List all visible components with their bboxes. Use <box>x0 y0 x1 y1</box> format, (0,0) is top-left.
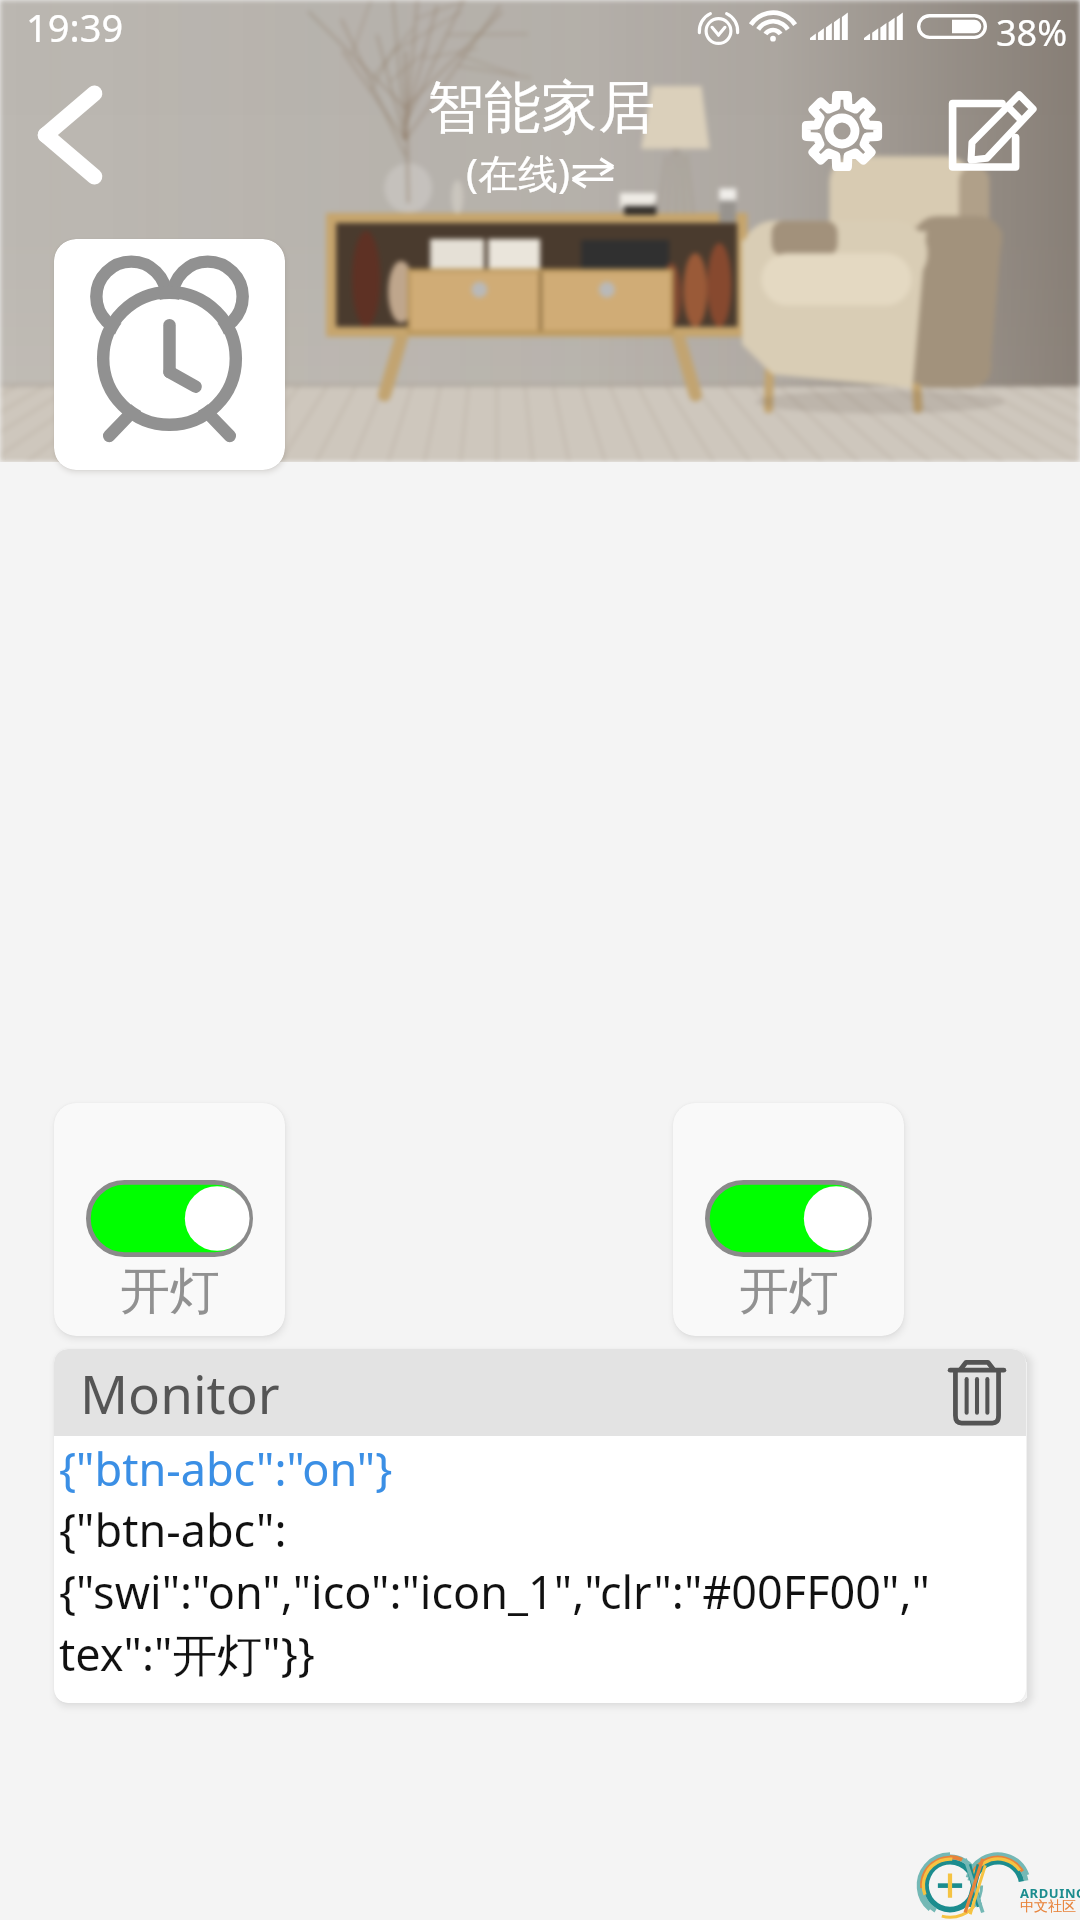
staticText: 开灯 <box>739 1260 839 1323</box>
button[interactable]: Edit <box>928 75 1042 189</box>
staticText: 19:39 <box>26 1 124 53</box>
button[interactable]: Clear monitor <box>934 1350 1020 1436</box>
staticText: (在线) <box>466 145 570 200</box>
staticText: 中文社区 <box>1020 1898 1076 1916</box>
staticText: {"btn-abc":"on"} <box>59 1438 393 1499</box>
staticText: 38% <box>996 8 1068 57</box>
staticText: {"btn-abc": {"swi":"on","ico":"icon_1","… <box>59 1499 930 1684</box>
staticText: 开灯 <box>120 1260 220 1323</box>
button[interactable]: 开灯 <box>673 1103 904 1336</box>
staticText: 智能家居 <box>427 72 655 144</box>
button[interactable]: Back <box>14 78 126 192</box>
staticText: ARDUINO <box>1020 1884 1080 1902</box>
button[interactable]: Settings <box>786 75 898 187</box>
button[interactable]: Alarm <box>54 239 285 470</box>
button[interactable]: 开灯 <box>54 1103 285 1336</box>
staticText: Monitor <box>80 1357 280 1429</box>
